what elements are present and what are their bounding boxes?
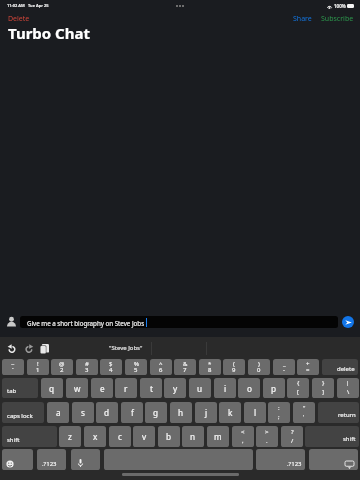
staticText: # (85, 360, 89, 368)
staticText: | (346, 379, 350, 387)
button[interactable]: k (219, 402, 241, 423)
button[interactable]: Subscribe (321, 14, 354, 24)
button[interactable]: w (66, 378, 88, 398)
button[interactable]: y (164, 378, 186, 398)
button[interactable]: .?123 (37, 449, 66, 470)
button[interactable]: t (140, 378, 162, 398)
button[interactable]: ^ (150, 359, 172, 375)
button[interactable]: ) (248, 359, 270, 375)
button[interactable]: _ (273, 359, 295, 375)
button[interactable]: Redo (21, 341, 36, 356)
staticText: \ (347, 388, 350, 396)
button[interactable]: Dictate (71, 449, 100, 470)
button[interactable]: ~ (2, 359, 24, 375)
staticText: y (173, 383, 178, 394)
staticText: ; (278, 413, 280, 421)
button[interactable]: Share (293, 14, 312, 24)
button[interactable]: a (47, 402, 69, 423)
staticText: & (183, 360, 188, 368)
staticText: " (303, 404, 306, 412)
button[interactable]: " (293, 402, 315, 423)
staticText: .?123 (287, 460, 302, 468)
button[interactable]: shift (305, 426, 359, 447)
button[interactable]: : (268, 402, 290, 423)
button[interactable]: @ (51, 359, 73, 375)
staticText: @ (59, 360, 65, 368)
button[interactable]: Delete (8, 14, 30, 24)
button[interactable]: r (115, 378, 137, 398)
button[interactable]: g (145, 402, 167, 423)
button[interactable]: e (91, 378, 113, 398)
button[interactable]: Emoji (2, 449, 33, 470)
staticText: c (118, 431, 122, 442)
staticText: . (266, 437, 268, 445)
button[interactable]: o (238, 378, 260, 398)
button[interactable]: z (59, 426, 81, 447)
staticText: : (278, 404, 280, 412)
button[interactable]: delete (322, 359, 358, 375)
button[interactable]: | (337, 378, 359, 398)
button[interactable]: < (232, 426, 254, 447)
button[interactable]: l (244, 402, 266, 423)
staticText: "Steve Jobs" (109, 344, 143, 352)
button[interactable]: j (195, 402, 217, 423)
staticText: % (134, 360, 139, 368)
staticText: Tue Apr 25 (28, 3, 49, 8)
staticText: 100% (334, 3, 346, 9)
button[interactable]: * (199, 359, 221, 375)
staticText: + (306, 360, 310, 368)
button[interactable]: % (125, 359, 147, 375)
button[interactable]: ( (223, 359, 245, 375)
button[interactable]: & (174, 359, 196, 375)
button[interactable]: s (72, 402, 94, 423)
staticText: shift (343, 435, 356, 443)
button[interactable]: ? (281, 426, 303, 447)
staticText: tab (7, 387, 17, 395)
button[interactable]: "Steve Jobs" (96, 337, 156, 359)
button[interactable]: m (207, 426, 229, 447)
button[interactable]: Send (342, 316, 354, 328)
button[interactable]: p (263, 378, 285, 398)
button[interactable]: tab (2, 378, 38, 398)
button[interactable]: Give me a short biography on Steve Jobs (20, 316, 338, 328)
button[interactable]: caps lock (2, 402, 44, 423)
staticText: delete (337, 365, 355, 373)
button[interactable]: } (312, 378, 334, 398)
button[interactable]: > (256, 426, 278, 447)
button[interactable]: v (133, 426, 155, 447)
staticText: $ (109, 360, 113, 368)
staticText: 2 (60, 366, 64, 374)
button[interactable]: + (297, 359, 319, 375)
button[interactable]: d (96, 402, 118, 423)
button[interactable]: ! (27, 359, 49, 375)
button[interactable]: $ (100, 359, 122, 375)
staticText: > (265, 428, 269, 436)
staticText: } (322, 379, 325, 387)
button[interactable]: x (84, 426, 106, 447)
button[interactable]: Hide keyboard (309, 449, 358, 470)
button[interactable]: q (41, 378, 63, 398)
button[interactable]: u (189, 378, 211, 398)
staticText: l (254, 407, 257, 418)
staticText: [ (297, 388, 299, 396)
button[interactable]: c (109, 426, 131, 447)
button[interactable]: i (214, 378, 236, 398)
button[interactable]: Paste (37, 341, 52, 356)
button[interactable]: b (158, 426, 180, 447)
button[interactable]: Undo (4, 341, 19, 356)
staticText: ~ (11, 360, 15, 368)
button[interactable]: shift (2, 426, 57, 447)
button[interactable]: .?123 (256, 449, 305, 470)
button[interactable]: { (287, 378, 309, 398)
staticText: x (93, 431, 98, 442)
button[interactable]: # (76, 359, 98, 375)
staticText: ' (303, 413, 305, 421)
staticText: = (306, 366, 310, 374)
button[interactable]: f (121, 402, 143, 423)
button[interactable]: h (170, 402, 192, 423)
button[interactable]: n (182, 426, 204, 447)
staticText: f (131, 407, 134, 418)
staticText: ) (258, 360, 260, 368)
button[interactable]: return (318, 402, 359, 423)
